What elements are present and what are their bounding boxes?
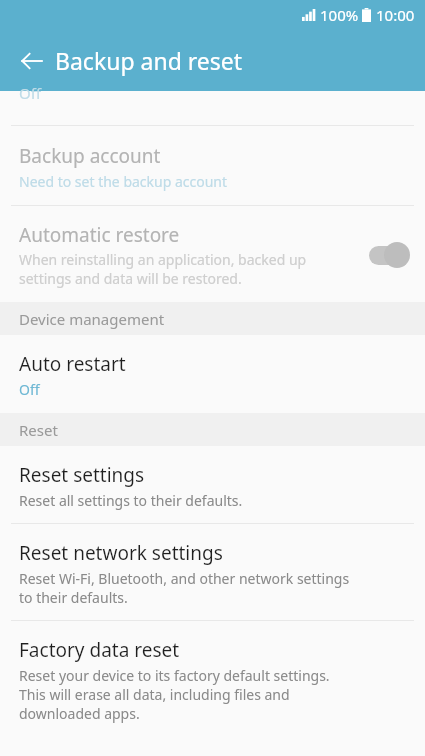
- staticText: Auto restart: [19, 351, 126, 377]
- staticText: Backup and reset: [55, 45, 243, 76]
- button[interactable]: Navigate up: [10, 39, 54, 83]
- staticText: Need to set the backup account: [19, 172, 228, 191]
- button[interactable]: Auto restart: [0, 335, 425, 413]
- button[interactable]: Backup account: [0, 126, 425, 205]
- staticText: 100%: [320, 5, 359, 25]
- staticText: Reset settings: [19, 462, 145, 488]
- staticText: When reinstalling an application, backed…: [19, 250, 307, 288]
- button[interactable]: Reset settings: [0, 446, 425, 523]
- button[interactable]: Reset network settings: [0, 524, 425, 620]
- staticText: Off: [19, 83, 42, 103]
- staticText: Off: [19, 380, 40, 399]
- staticText: Reset network settings: [19, 540, 223, 566]
- staticText: Factory data reset: [19, 637, 180, 663]
- button[interactable]: Factory data reset: [0, 621, 425, 737]
- button[interactable]: Automatic restore: [0, 206, 425, 302]
- staticText: Backup account: [19, 143, 161, 169]
- staticText: Reset Wi-Fi, Bluetooth, and other networ…: [19, 569, 350, 607]
- staticText: Reset: [19, 420, 58, 440]
- staticText: Automatic restore: [19, 222, 180, 248]
- staticText: Device management: [19, 309, 165, 329]
- staticText: Reset your device to its factory default…: [19, 666, 330, 723]
- staticText: Reset all settings to their defaults.: [19, 491, 243, 510]
- staticText: 10:00: [376, 5, 415, 25]
